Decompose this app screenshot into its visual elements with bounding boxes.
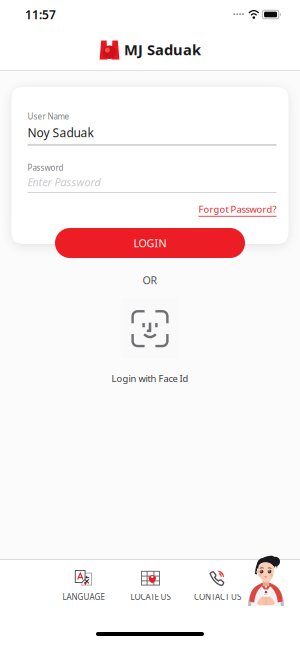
staticText: Forgot Password? bbox=[198, 203, 276, 215]
staticText: LOGIN bbox=[133, 236, 166, 250]
staticText: LOCATE US bbox=[130, 592, 170, 602]
staticText: 11:57 bbox=[25, 6, 56, 22]
staticText: CONTACT US bbox=[194, 592, 241, 602]
button[interactable]: LOGIN bbox=[55, 228, 245, 258]
staticText: OR bbox=[142, 273, 157, 287]
staticText: Login with Face Id bbox=[111, 372, 188, 385]
button[interactable]: Forgot Password? bbox=[198, 203, 276, 217]
staticText: User Name bbox=[27, 111, 69, 122]
staticText: LANGUAGE bbox=[62, 592, 104, 602]
button[interactable]: Login with Face Id bbox=[122, 298, 178, 359]
staticText: Noy Saduak bbox=[27, 125, 93, 140]
button[interactable]: LOCATE US bbox=[117, 561, 184, 607]
button[interactable]: CONTACT US bbox=[184, 561, 251, 607]
staticText: Enter Password bbox=[27, 175, 100, 189]
button[interactable]: LANGUAGE bbox=[50, 561, 117, 607]
staticText: Password bbox=[27, 162, 63, 173]
staticText: MJ Saduak bbox=[124, 40, 201, 59]
